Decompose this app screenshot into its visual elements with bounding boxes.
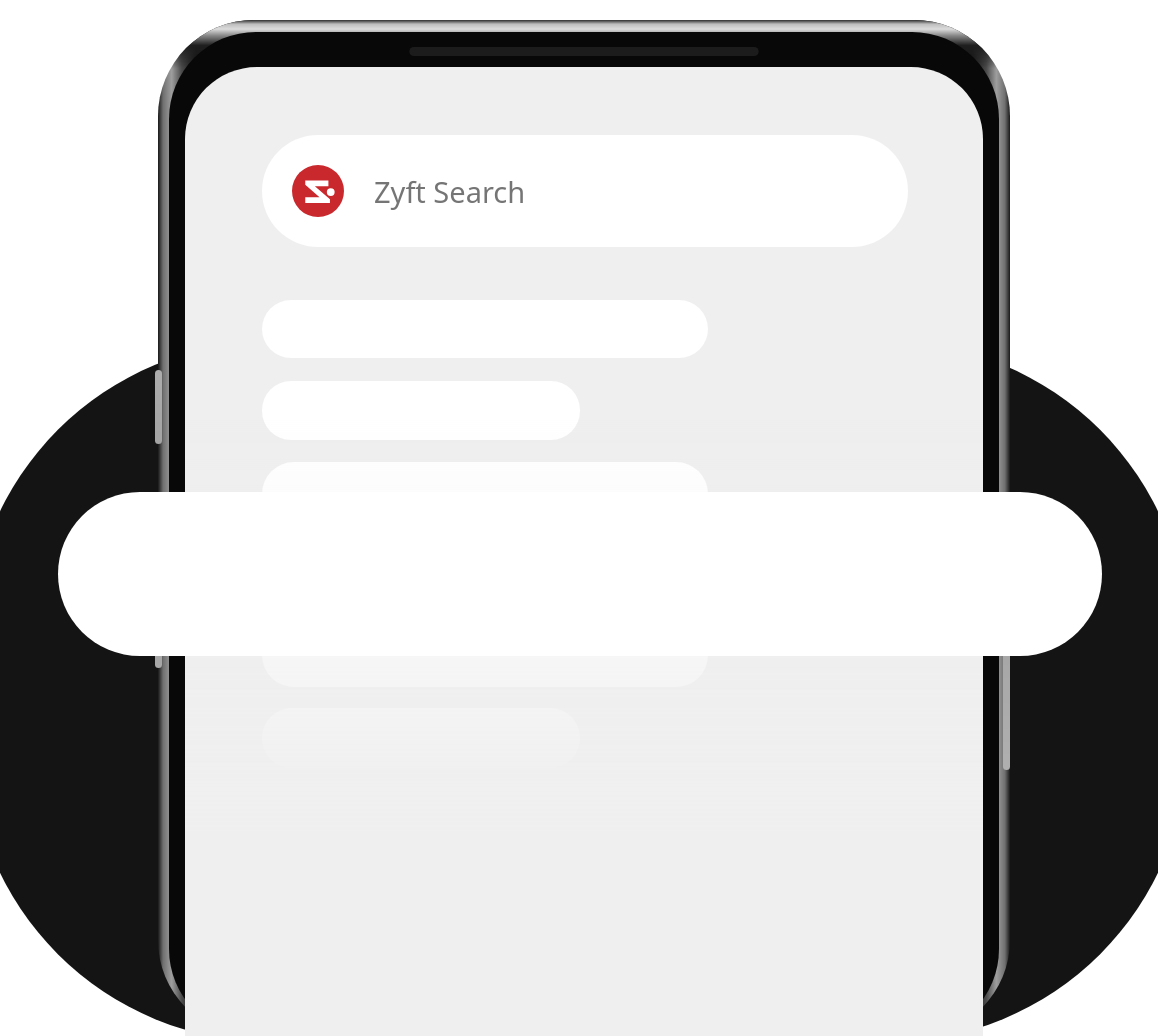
other: Zyft logo xyxy=(292,165,344,217)
button[interactable]: Zyft logo xyxy=(262,135,908,247)
button[interactable] xyxy=(58,492,1102,656)
staticText: Zyft Search xyxy=(374,172,526,211)
